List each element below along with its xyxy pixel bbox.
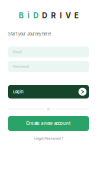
button[interactable]: Create a new account: [0, 116, 97, 131]
button[interactable]: Forgot Password ?: [0, 136, 97, 141]
staticText: Password: [13, 64, 29, 69]
staticText: I: [60, 11, 62, 20]
staticText: E: [74, 11, 78, 20]
staticText: or: [47, 107, 50, 111]
staticText: Create a new account: [26, 121, 71, 126]
staticText: B: [19, 11, 24, 20]
staticText: Email: [13, 50, 22, 54]
staticText: i: [27, 11, 29, 20]
staticText: V: [65, 11, 70, 20]
staticText: D: [42, 11, 47, 20]
staticText: Login: [13, 89, 23, 94]
staticText: Start your Journey here!: [8, 31, 51, 36]
button[interactable]: Login: [0, 85, 97, 98]
staticText: R: [51, 11, 56, 20]
staticText: Forgot Password ?: [33, 136, 63, 141]
staticText: D: [33, 11, 38, 20]
